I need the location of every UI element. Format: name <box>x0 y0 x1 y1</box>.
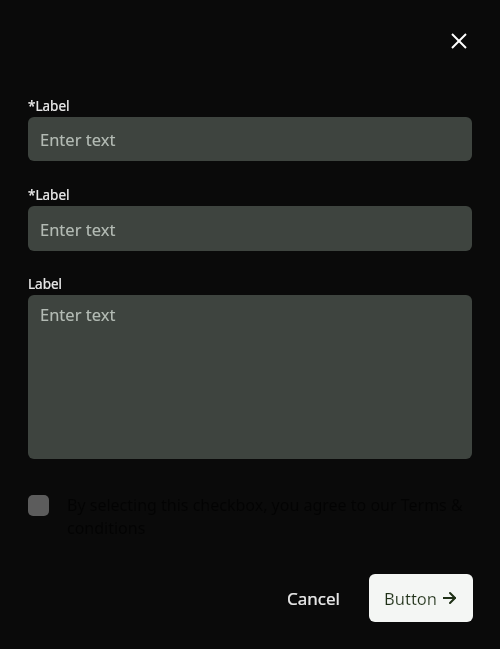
staticText: Label <box>28 275 63 293</box>
button[interactable]: Button <box>369 574 473 622</box>
button[interactable]: By selecting this checkbox, you agree to… <box>28 493 472 537</box>
button[interactable]: Enter text <box>28 117 472 161</box>
button[interactable]: Enter text <box>28 206 472 251</box>
staticText: Cancel <box>287 587 340 610</box>
staticText: Enter text <box>40 218 116 240</box>
staticText: *Label <box>28 186 70 204</box>
staticText: *Label <box>28 97 70 115</box>
staticText: Enter text <box>40 303 116 325</box>
button[interactable]: Cancel <box>276 575 351 622</box>
button[interactable]: Close <box>435 17 482 64</box>
staticText: Enter text <box>40 128 116 150</box>
staticText: Button <box>384 587 438 609</box>
button[interactable]: Enter text <box>28 295 472 459</box>
